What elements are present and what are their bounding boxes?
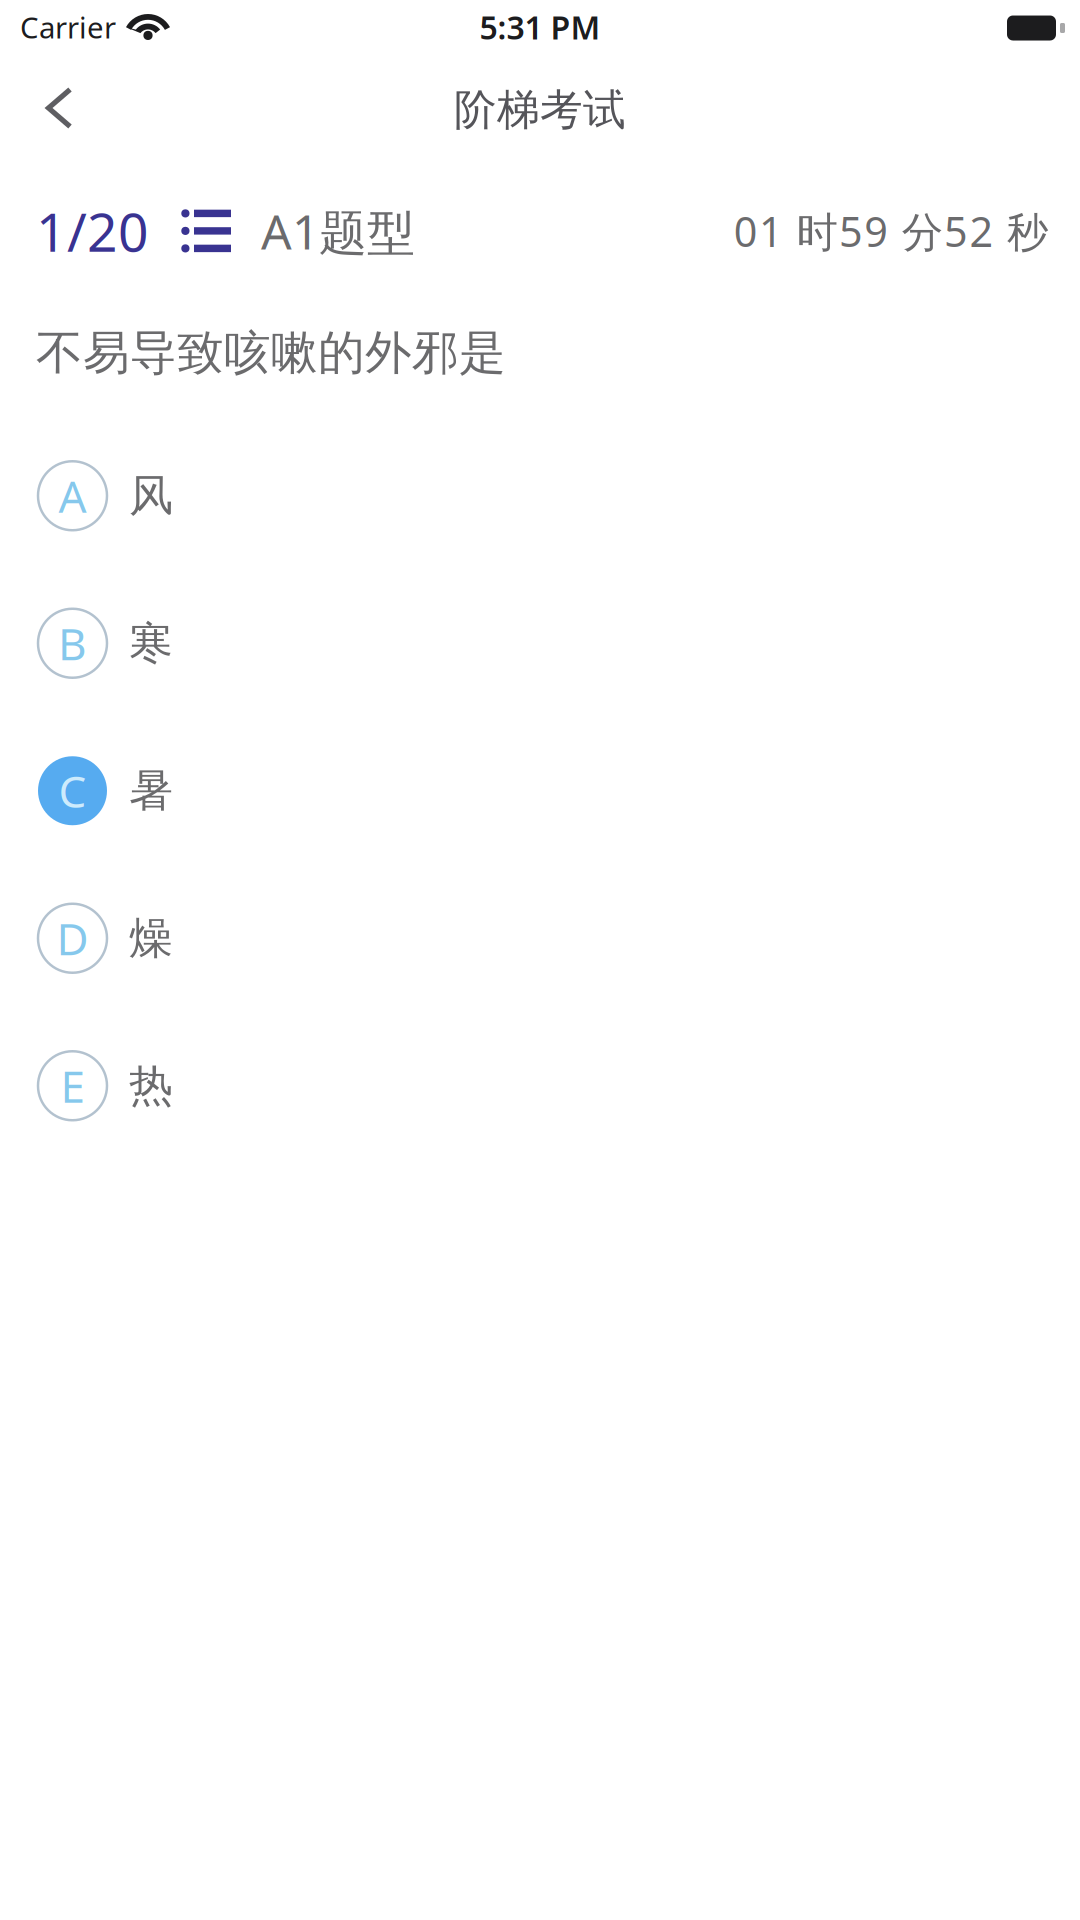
staticText: 不易导致咳嗽的外邪是: [36, 324, 506, 382]
staticText: D: [56, 909, 88, 967]
staticText: A1题型: [261, 199, 415, 263]
staticText: E: [60, 1056, 84, 1115]
button[interactable]: E: [0, 1012, 1080, 1159]
staticText: 5:31 PM: [479, 6, 600, 48]
staticText: 01 时59 分52 秒: [734, 204, 1048, 258]
button[interactable]: Back: [0, 56, 118, 152]
staticText: B: [58, 614, 87, 672]
staticText: C: [58, 761, 86, 820]
button[interactable]: Question list: [149, 209, 261, 253]
button[interactable]: A: [0, 422, 1080, 569]
staticText: Carrier: [20, 7, 116, 46]
button[interactable]: D: [0, 864, 1080, 1012]
staticText: 寒: [129, 616, 173, 670]
staticText: 暑: [129, 764, 173, 818]
button[interactable]: B: [0, 569, 1080, 717]
button[interactable]: C: [0, 717, 1080, 864]
staticText: 阶梯考试: [454, 84, 626, 136]
staticText: 热: [129, 1059, 173, 1113]
staticText: 燥: [129, 911, 173, 965]
staticText: A: [58, 466, 86, 525]
staticText: 风: [129, 469, 173, 523]
staticText: 1/20: [36, 196, 149, 266]
